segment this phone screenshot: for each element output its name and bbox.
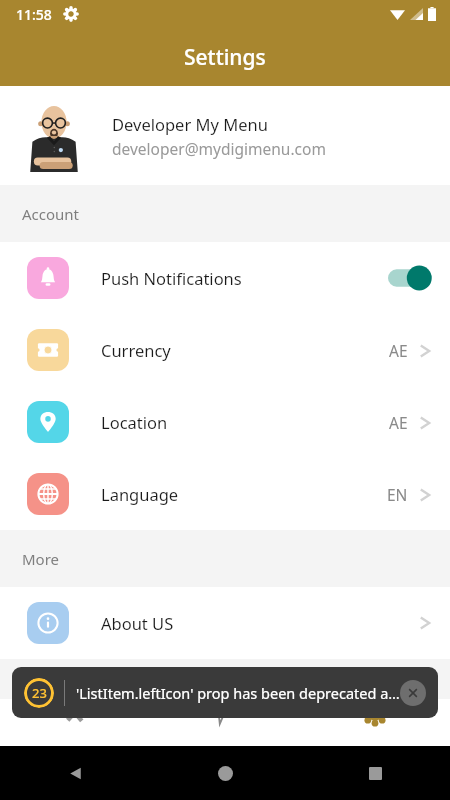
staticText: About US	[101, 612, 174, 634]
button[interactable]: Push notifications toggle	[388, 266, 432, 290]
staticText: Account	[22, 204, 80, 224]
staticText: Location	[101, 411, 168, 433]
button[interactable]: Language	[0, 458, 450, 530]
staticText: 'ListItem.leftIcon' prop has been deprec…	[76, 683, 400, 703]
staticText: 11:58	[16, 5, 52, 24]
staticText: Language	[101, 483, 179, 505]
button[interactable]: Back	[60, 758, 90, 788]
staticText: Currency	[101, 339, 171, 361]
button[interactable]: Location	[0, 386, 450, 458]
button[interactable]: Tools	[0, 699, 150, 746]
button[interactable]: Developer My Menu	[0, 86, 450, 185]
button[interactable]: Home	[210, 758, 240, 788]
button[interactable]: About US	[0, 587, 450, 659]
staticText: EN	[387, 484, 408, 505]
button[interactable]: Chat	[150, 699, 300, 746]
staticText: Developer My Menu	[112, 113, 268, 135]
button[interactable]: Settings	[300, 699, 450, 746]
staticText: Push Notifications	[101, 267, 242, 289]
staticText: 23	[32, 684, 47, 702]
staticText: Settings	[184, 43, 266, 72]
staticText: More	[22, 549, 60, 569]
button[interactable]: Push Notifications	[0, 242, 450, 314]
button[interactable]: Dismiss	[400, 680, 426, 706]
staticText: developer@mydigimenu.com	[112, 138, 326, 159]
button[interactable]: Recents	[360, 758, 390, 788]
staticText: AE	[389, 412, 408, 433]
staticText: AE	[389, 340, 408, 361]
button[interactable]: Currency	[0, 314, 450, 386]
